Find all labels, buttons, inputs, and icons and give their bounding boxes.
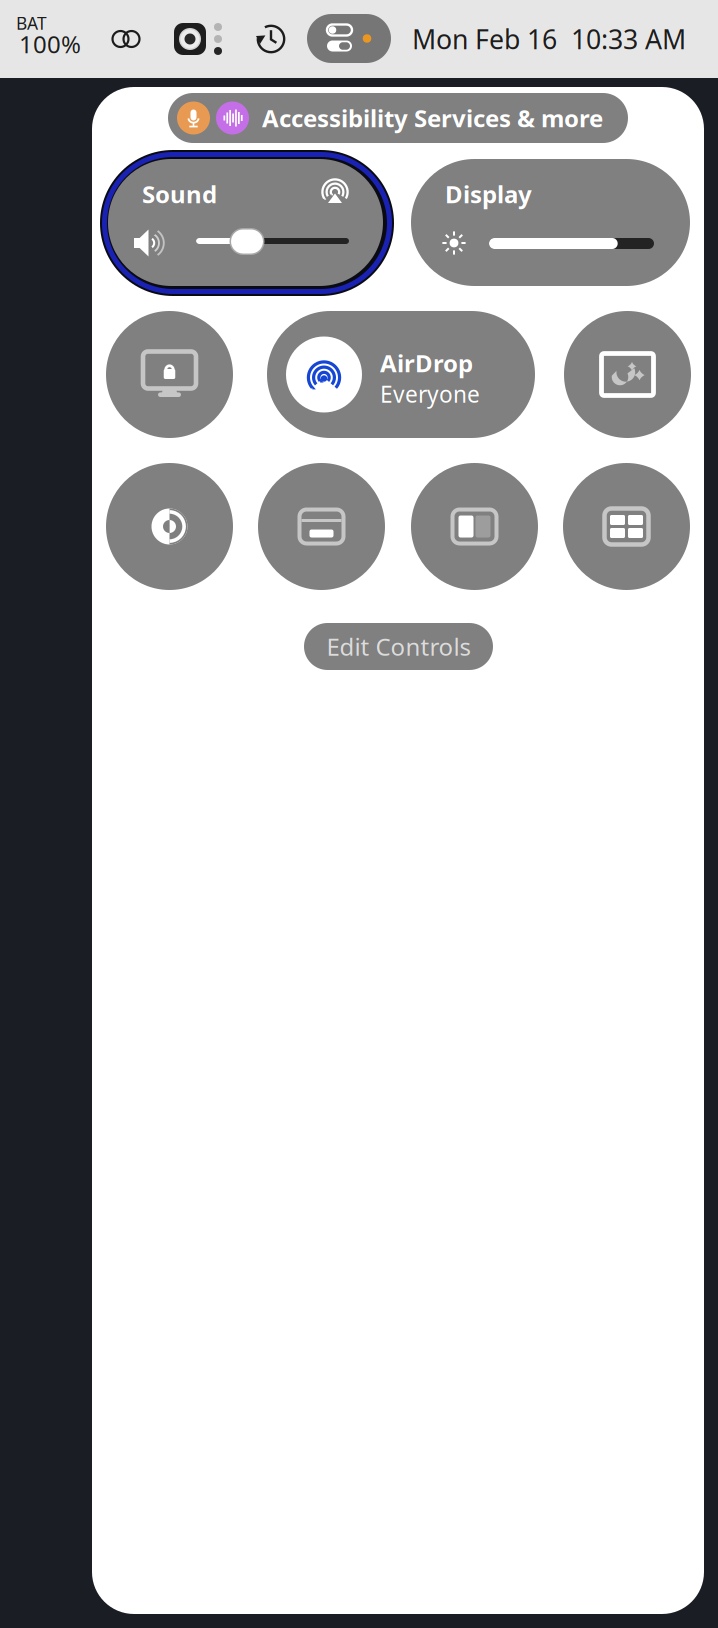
button[interactable]: Screen Recording	[174, 23, 206, 55]
staticText: Sound	[142, 178, 217, 210]
staticText: BAT	[16, 11, 47, 34]
button[interactable]: Mission Control	[563, 463, 690, 590]
button[interactable]: Night Shift	[564, 311, 691, 438]
button[interactable]: Sound	[108, 159, 383, 286]
staticText: Everyone	[380, 379, 480, 409]
button[interactable]: Display	[411, 159, 690, 286]
staticText: AirDrop	[380, 347, 473, 379]
button[interactable]: Time Machine	[256, 24, 286, 54]
button[interactable]: Screen Lock	[106, 311, 233, 438]
button[interactable]: Stage Manager	[411, 463, 538, 590]
staticText: 100%	[19, 28, 81, 60]
button[interactable]: Mon Feb 16 10:33 AM	[412, 19, 702, 59]
button[interactable]: BAT	[16, 14, 90, 60]
button[interactable]: AirDrop	[267, 311, 535, 438]
button[interactable]: Shortcuts	[111, 28, 141, 50]
staticText: Edit Controls	[326, 631, 470, 662]
button[interactable]: Accessibility Services & more	[168, 93, 628, 143]
button[interactable]: Appearance	[106, 463, 233, 590]
button[interactable]: Edit Controls	[304, 623, 493, 670]
staticText: Display	[445, 178, 532, 210]
button[interactable]: Control Center	[307, 14, 391, 63]
staticText: Mon Feb 16 10:33 AM	[412, 21, 686, 57]
button[interactable]: Menu Bar	[258, 463, 385, 590]
staticText: Accessibility Services & more	[262, 102, 603, 134]
